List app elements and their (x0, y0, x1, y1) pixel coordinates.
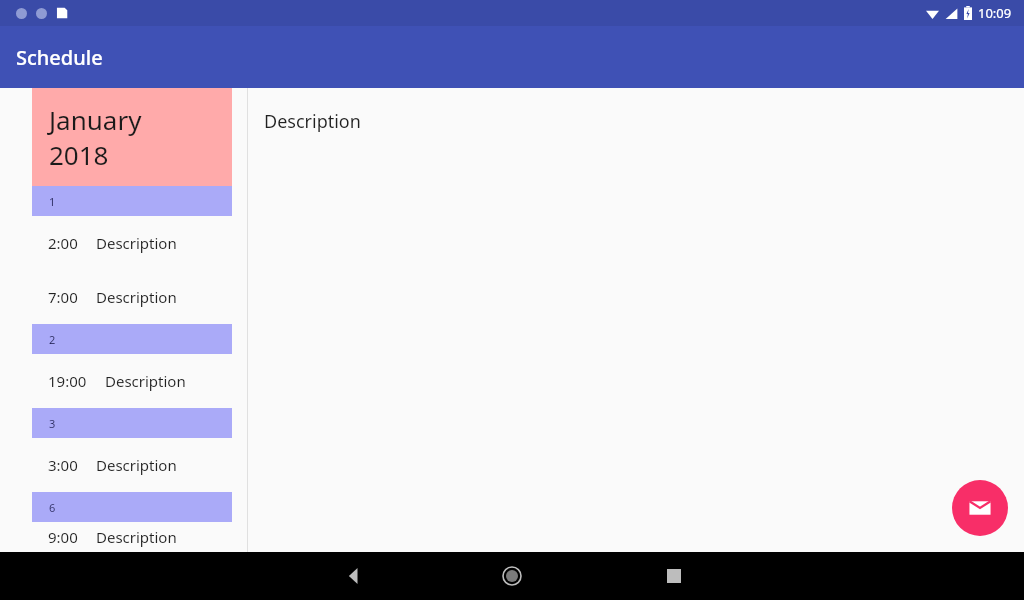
staticText: 1 (49, 194, 56, 209)
button[interactable]: Back (330, 552, 378, 600)
staticText: 10:09 (978, 4, 1012, 22)
staticText: 6 (49, 500, 56, 515)
staticText: 19:00 (48, 371, 87, 391)
button[interactable]: 3:00 (0, 438, 247, 492)
staticText: Description (105, 371, 186, 391)
staticText: Description (96, 455, 177, 475)
staticText: January (49, 102, 142, 137)
button[interactable]: 3 (32, 408, 232, 438)
staticText: Description (96, 233, 177, 253)
staticText: 3:00 (48, 455, 78, 475)
staticText: 9:00 (48, 527, 78, 547)
button[interactable]: 19:00 (0, 354, 247, 408)
button[interactable]: 2:00 (0, 216, 247, 270)
staticText: Schedule (16, 44, 103, 71)
staticText: 2 (49, 332, 56, 347)
staticText: 2018 (49, 137, 109, 172)
staticText: Description (264, 109, 361, 134)
staticText: 7:00 (48, 287, 78, 307)
button[interactable]: 9:00 (0, 522, 247, 552)
button[interactable]: Recent apps (650, 552, 698, 600)
staticText: Description (96, 287, 177, 307)
button[interactable]: January (32, 88, 232, 186)
button[interactable]: 2 (32, 324, 232, 354)
button[interactable]: 1 (32, 186, 232, 216)
button[interactable]: Home (488, 552, 536, 600)
button[interactable]: 6 (32, 492, 232, 522)
button[interactable]: Compose message (952, 480, 1008, 536)
button[interactable]: 7:00 (0, 270, 247, 324)
staticText: 2:00 (48, 233, 78, 253)
staticText: Description (96, 527, 177, 547)
staticText: 3 (49, 416, 56, 431)
